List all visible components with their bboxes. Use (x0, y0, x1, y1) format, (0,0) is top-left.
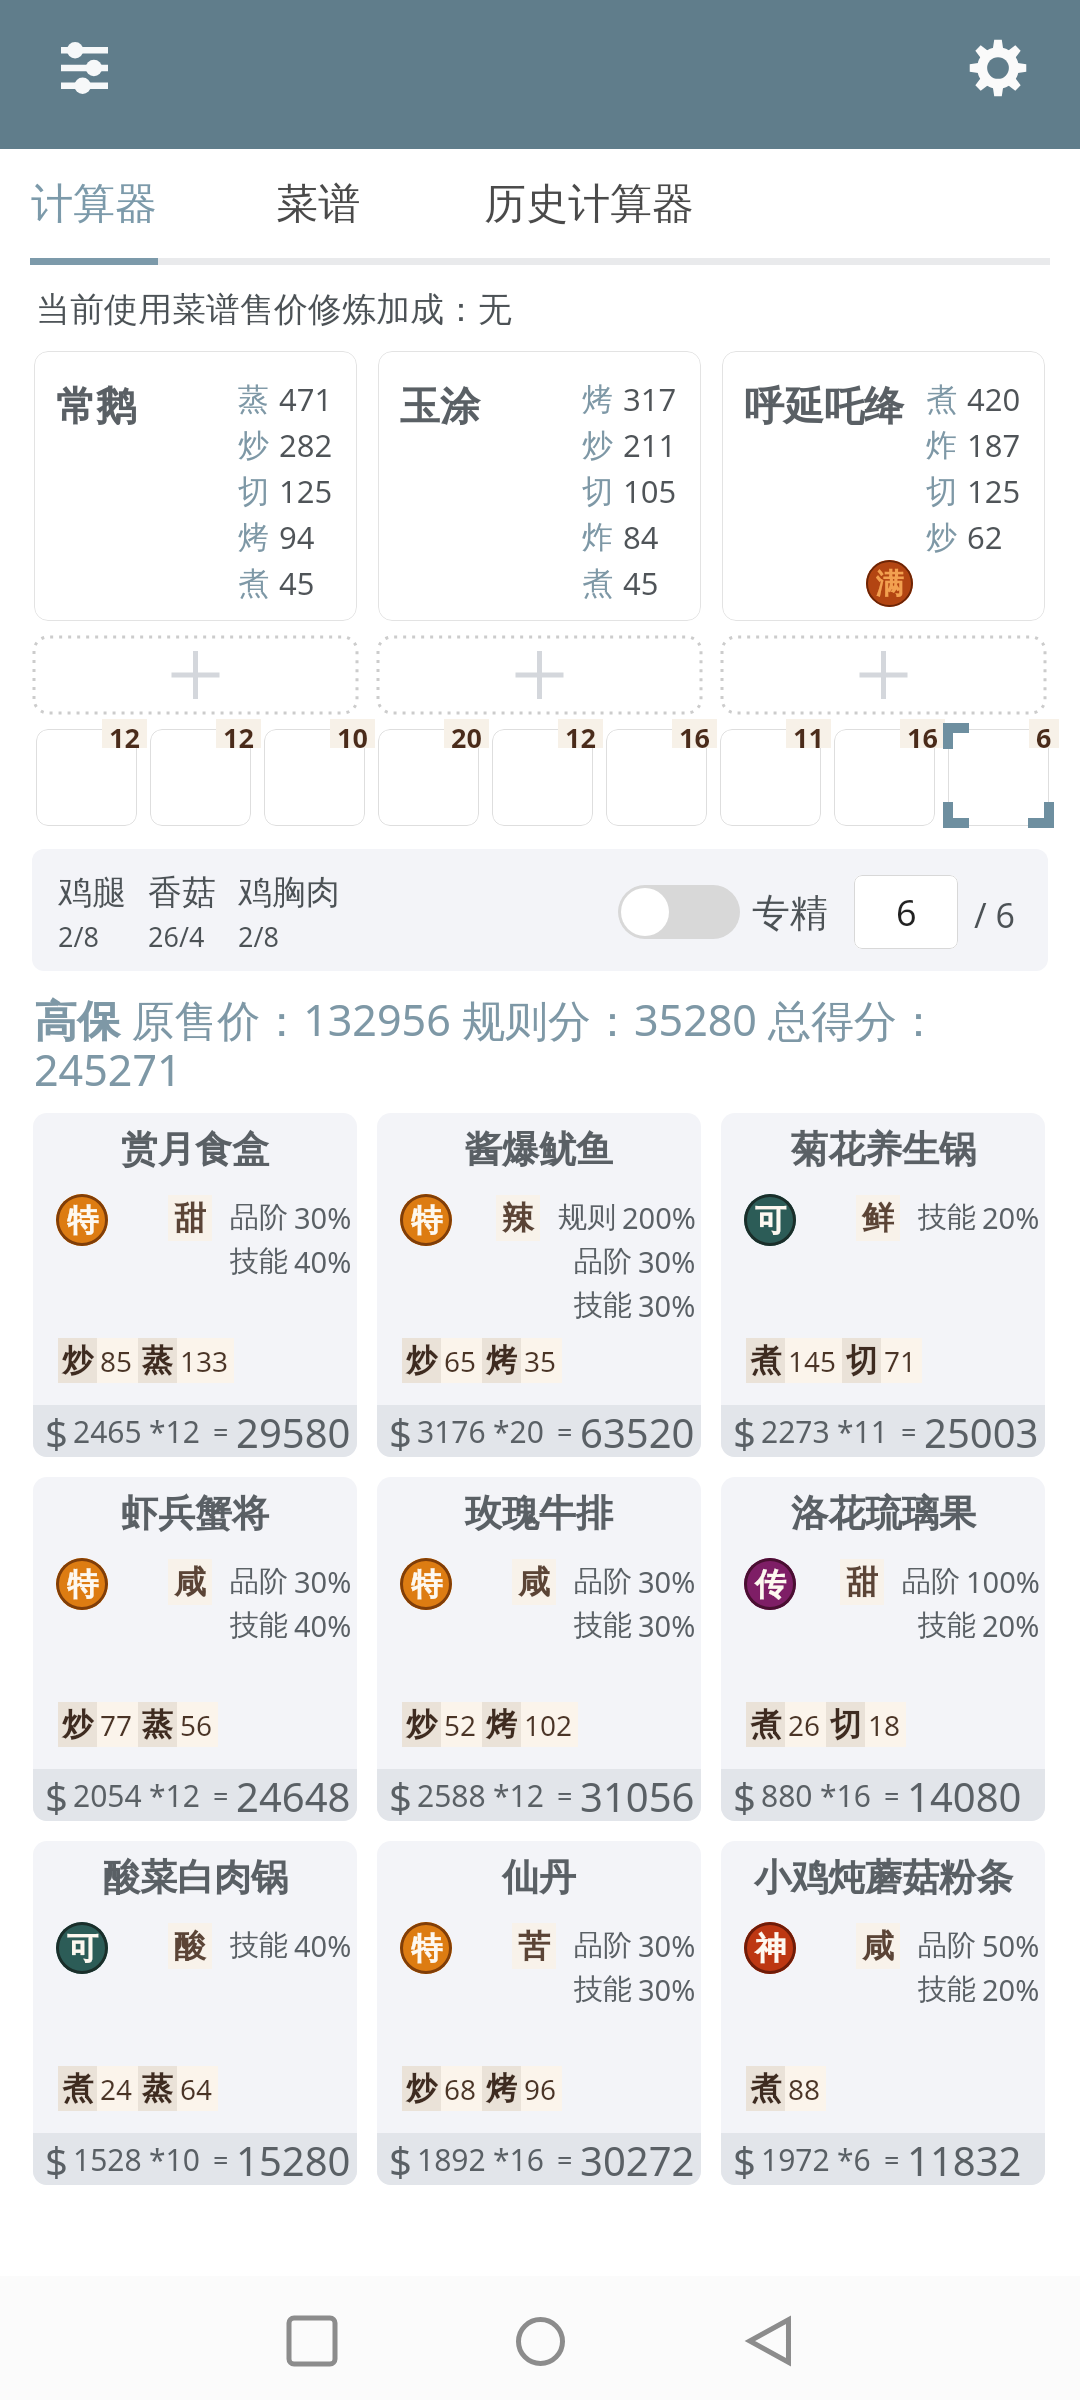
staticText: 16 (907, 719, 938, 748)
staticText: 20% (982, 1606, 1040, 1645)
button[interactable] (492, 729, 593, 826)
button[interactable]: 赏月食盒 (33, 1113, 357, 1457)
button[interactable]: Filter settings (40, 24, 128, 112)
button[interactable] (36, 729, 137, 826)
button[interactable]: Add ingredient (722, 637, 1045, 713)
staticText: 6 (896, 888, 917, 937)
staticText: 蒸 (142, 1341, 173, 1380)
staticText: $ (733, 1405, 756, 1457)
staticText: 品阶 (902, 1563, 960, 1600)
staticText: 20 (451, 719, 482, 748)
staticText: 咸 (174, 1562, 206, 1602)
button[interactable] (720, 729, 821, 826)
staticText: / 6 (974, 892, 1015, 938)
staticText: 菊花养生锅 (791, 1126, 976, 1173)
staticText: 技能 (918, 1607, 976, 1644)
button[interactable] (150, 729, 251, 826)
staticText: 品阶 (574, 1927, 632, 1964)
staticText: 26 (788, 1706, 821, 1744)
button[interactable]: Back (706, 2295, 836, 2387)
staticText: 30% (294, 1562, 352, 1601)
staticText: 虾兵蟹将 (121, 1490, 269, 1537)
button[interactable]: 洛花琉璃果 (721, 1477, 1045, 1821)
staticText: 品阶 (574, 1563, 632, 1600)
staticText: 煮 (238, 564, 279, 603)
button[interactable] (378, 729, 479, 826)
staticText: 炸 (582, 518, 623, 557)
button[interactable]: 呼延吒绛 (722, 351, 1045, 621)
button[interactable]: Toggle specialization (618, 885, 740, 939)
staticText: 25003 (924, 1405, 1039, 1457)
button[interactable]: 酱爆鱿鱼 (377, 1113, 701, 1457)
button[interactable]: 玉涂 (378, 351, 701, 621)
button[interactable]: 历史计算器 (448, 149, 730, 259)
staticText: 10 (337, 719, 368, 748)
button[interactable]: 常鹅 (34, 351, 357, 621)
staticText: = (557, 2141, 573, 2178)
staticText: 30% (638, 1926, 696, 1965)
staticText: 65 (444, 1342, 477, 1380)
staticText: 211 (623, 424, 677, 466)
staticText: 20% (982, 1970, 1040, 2009)
staticText: $ (45, 1405, 68, 1457)
staticText: 63520 (580, 1405, 695, 1457)
staticText: 45 (279, 562, 315, 604)
staticText: 30% (638, 1562, 696, 1601)
button[interactable] (606, 729, 707, 826)
staticText: *10 (149, 2139, 200, 2180)
button[interactable]: 计算器 (30, 149, 158, 259)
staticText: 煮 (750, 1705, 781, 1744)
button[interactable]: 玫瑰牛排 (377, 1477, 701, 1821)
staticText: 香菇 (148, 871, 238, 914)
staticText: 11832 (907, 2133, 1022, 2185)
staticText: 12 (223, 719, 254, 748)
staticText: 62 (967, 516, 1003, 558)
button[interactable]: 菊花养生锅 (721, 1113, 1045, 1457)
staticText: = (213, 1413, 229, 1450)
staticText: 常鹅 (56, 381, 136, 431)
button[interactable]: 6 (854, 875, 958, 949)
button[interactable]: Home (475, 2295, 605, 2387)
button[interactable] (834, 729, 935, 826)
staticText: 30272 (580, 2133, 695, 2185)
staticText: 辣 (502, 1198, 534, 1238)
staticText: 酸菜白肉锅 (103, 1854, 288, 1901)
staticText: 小鸡炖蘑菇粉条 (754, 1854, 1013, 1901)
staticText: 炸 (926, 426, 967, 465)
staticText: 特 (411, 1929, 442, 1968)
staticText: 282 (279, 424, 333, 466)
staticText: 甜 (174, 1198, 206, 1238)
button[interactable] (264, 729, 365, 826)
staticText: 规则 (558, 1199, 616, 1236)
button[interactable]: 小鸡炖蘑菇粉条 (721, 1841, 1045, 2185)
staticText: 咸 (862, 1926, 894, 1966)
button[interactable]: Recents (247, 2295, 377, 2387)
button[interactable]: Add ingredient (34, 637, 357, 713)
button[interactable]: 酸菜白肉锅 (33, 1841, 357, 2185)
staticText: 100% (966, 1562, 1040, 1601)
button[interactable]: 仙丹 (377, 1841, 701, 2185)
staticText: $ (389, 1405, 412, 1457)
staticText: $ (733, 1769, 756, 1821)
button[interactable] (948, 729, 1049, 826)
staticText: *12 (149, 1411, 200, 1452)
staticText: 切 (830, 1705, 861, 1744)
staticText: 85 (100, 1342, 133, 1380)
staticText: 煮 (62, 2069, 93, 2108)
staticText: 18 (868, 1706, 901, 1744)
staticText: 94 (279, 516, 315, 558)
staticText: 145 (788, 1342, 837, 1380)
staticText: *12 (493, 1775, 544, 1816)
staticText: 玫瑰牛排 (465, 1490, 613, 1537)
staticText: = (901, 1413, 917, 1450)
staticText: 40% (294, 1606, 352, 1645)
staticText: 96 (524, 2070, 557, 2108)
staticText: 40% (294, 1242, 352, 1281)
staticText: 当前使用菜谱售价修炼加成：无 (36, 288, 512, 331)
button[interactable]: 菜谱 (238, 149, 398, 259)
button[interactable]: Settings (947, 17, 1049, 119)
button[interactable]: 虾兵蟹将 (33, 1477, 357, 1821)
staticText: 酱爆鱿鱼 (465, 1126, 613, 1173)
button[interactable]: Add ingredient (378, 637, 701, 713)
staticText: *16 (493, 2139, 544, 2180)
